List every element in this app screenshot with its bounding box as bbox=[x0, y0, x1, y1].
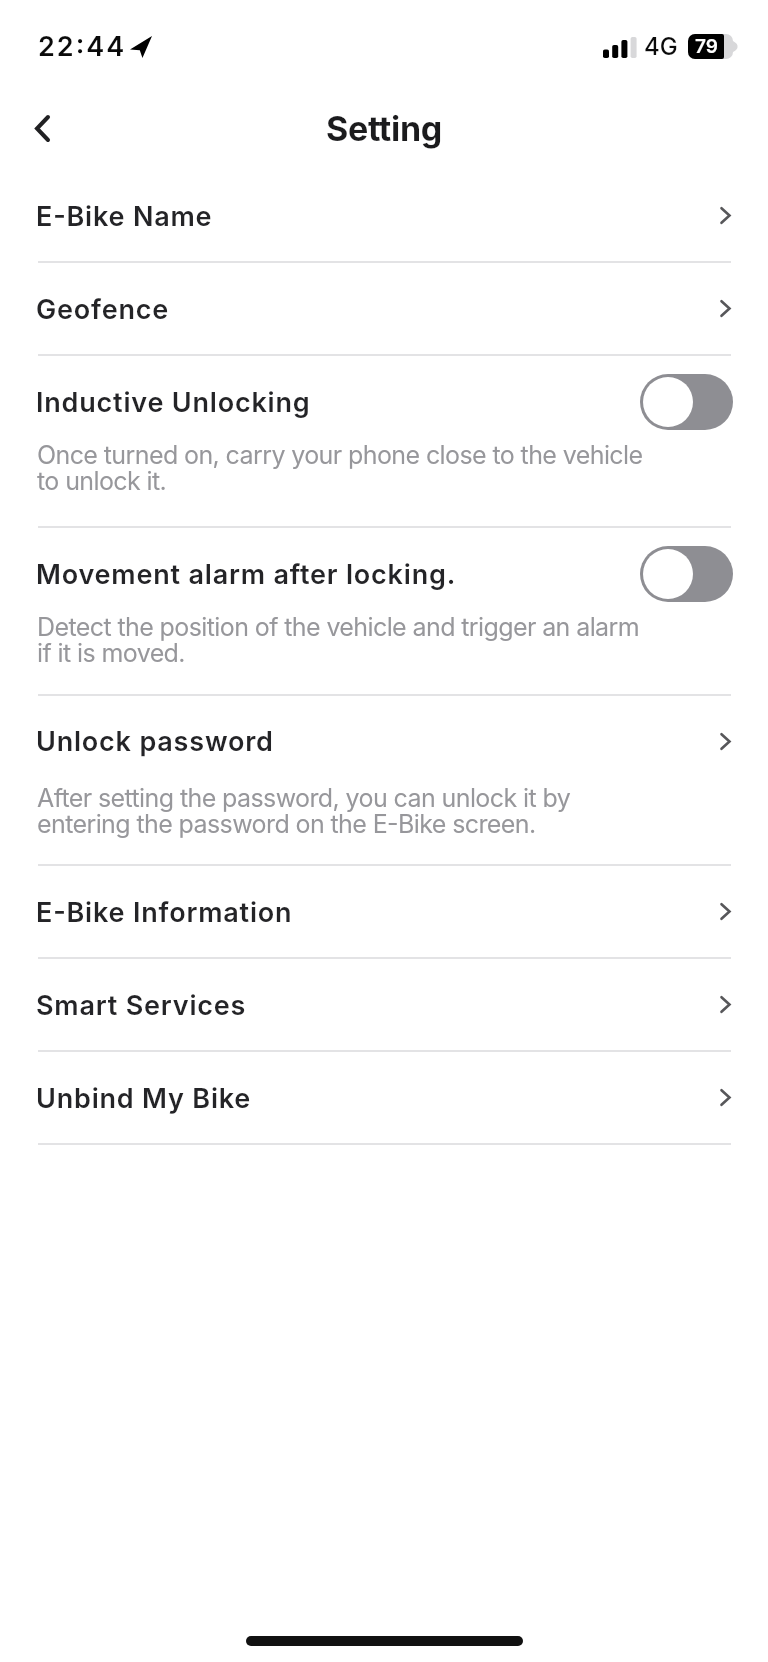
button[interactable]: Smart Services bbox=[0, 959, 768, 1050]
staticText: 79 bbox=[695, 35, 718, 58]
button[interactable] bbox=[640, 546, 733, 602]
button[interactable]: Unbind My Bike bbox=[0, 1052, 768, 1143]
staticText: Unlock password bbox=[36, 725, 274, 758]
staticText: Smart Services bbox=[36, 989, 247, 1022]
button[interactable] bbox=[24, 106, 60, 150]
button[interactable]: E-Bike Name bbox=[0, 170, 768, 261]
button[interactable]: E-Bike Information bbox=[0, 866, 768, 957]
button[interactable]: Geofence bbox=[0, 263, 768, 354]
staticText: Unbind My Bike bbox=[36, 1082, 252, 1115]
staticText: 22:44 bbox=[38, 30, 127, 63]
button[interactable]: Inductive Unlocking bbox=[0, 356, 768, 526]
staticText: E-Bike Information bbox=[36, 896, 293, 929]
button[interactable] bbox=[640, 374, 733, 430]
button[interactable]: Unlock password bbox=[0, 696, 768, 864]
staticText: Movement alarm after locking. bbox=[36, 558, 457, 591]
button[interactable]: Movement alarm after locking. bbox=[0, 528, 768, 694]
staticText: Inductive Unlocking bbox=[36, 386, 311, 419]
staticText: Detect the position of the vehicle and t… bbox=[37, 612, 640, 668]
staticText: 4G bbox=[644, 32, 678, 61]
staticText: Once turned on, carry your phone close t… bbox=[37, 440, 643, 496]
staticText: E-Bike Name bbox=[36, 200, 213, 233]
staticText: Setting bbox=[326, 108, 442, 149]
staticText: Geofence bbox=[36, 293, 170, 326]
staticText: After setting the password, you can unlo… bbox=[37, 783, 571, 839]
